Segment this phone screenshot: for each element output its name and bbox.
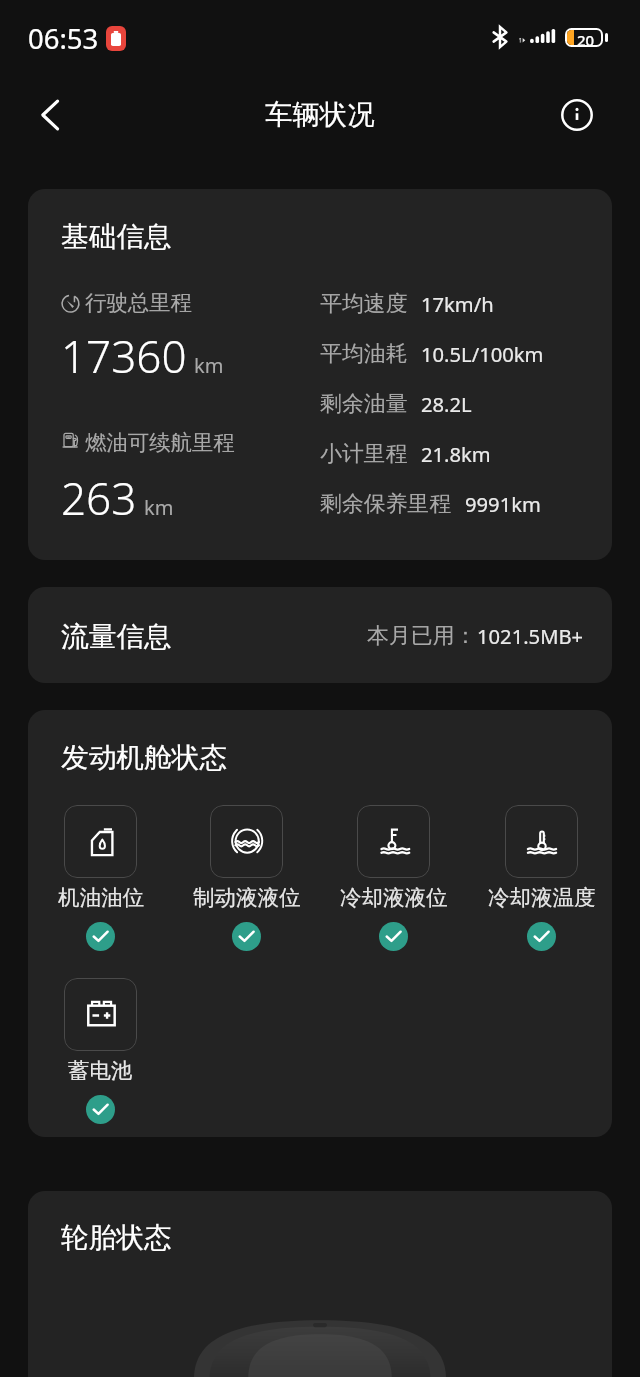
staticText: 17km/h [421,290,494,318]
staticText: 小计里程 [320,440,408,468]
button[interactable]: 冷却液温度 [505,805,578,878]
staticText: 263 [61,468,137,528]
staticText: 发动机舱状态 [61,740,228,775]
staticText: 燃油可续航里程 [85,429,235,456]
staticText: 17360 [61,326,187,386]
staticText: km [194,352,224,379]
staticText: 流量信息 [61,619,172,654]
staticText: 制动液液位 [193,884,301,911]
staticText: 28.2L [421,390,472,418]
staticText: 冷却液温度 [488,884,596,911]
staticText: km [144,494,174,521]
staticText: 本月已用： [367,622,477,650]
staticText: 轮胎状态 [61,1220,172,1255]
staticText: 06:53 [28,20,99,57]
button[interactable]: 制动液液位 [210,805,283,878]
button[interactable]: 冷却液液位 [357,805,430,878]
staticText: 剩余油量 [320,390,408,418]
staticText: 冷却液液位 [340,884,448,911]
staticText: 机油油位 [58,884,144,911]
staticText: 基础信息 [61,219,172,254]
staticText: 蓄电池 [68,1057,133,1084]
staticText: 10.5L/100km [421,340,544,368]
staticText: 1021.5MB+ [477,622,584,650]
staticText: 剩余保养里程 [320,490,452,518]
staticText: 20 [577,30,595,45]
button[interactable]: Back [22,87,78,143]
staticText: 行驶总里程 [85,289,192,316]
button[interactable]: Info [551,89,603,141]
button[interactable]: 蓄电池 [64,978,137,1051]
staticText: 平均油耗 [320,340,408,368]
staticText: 21.8km [421,440,491,468]
staticText: 9991km [465,490,541,518]
button[interactable]: 机油油位 [64,805,137,878]
staticText: 车辆状况 [265,98,375,133]
staticText: 平均速度 [320,290,408,318]
